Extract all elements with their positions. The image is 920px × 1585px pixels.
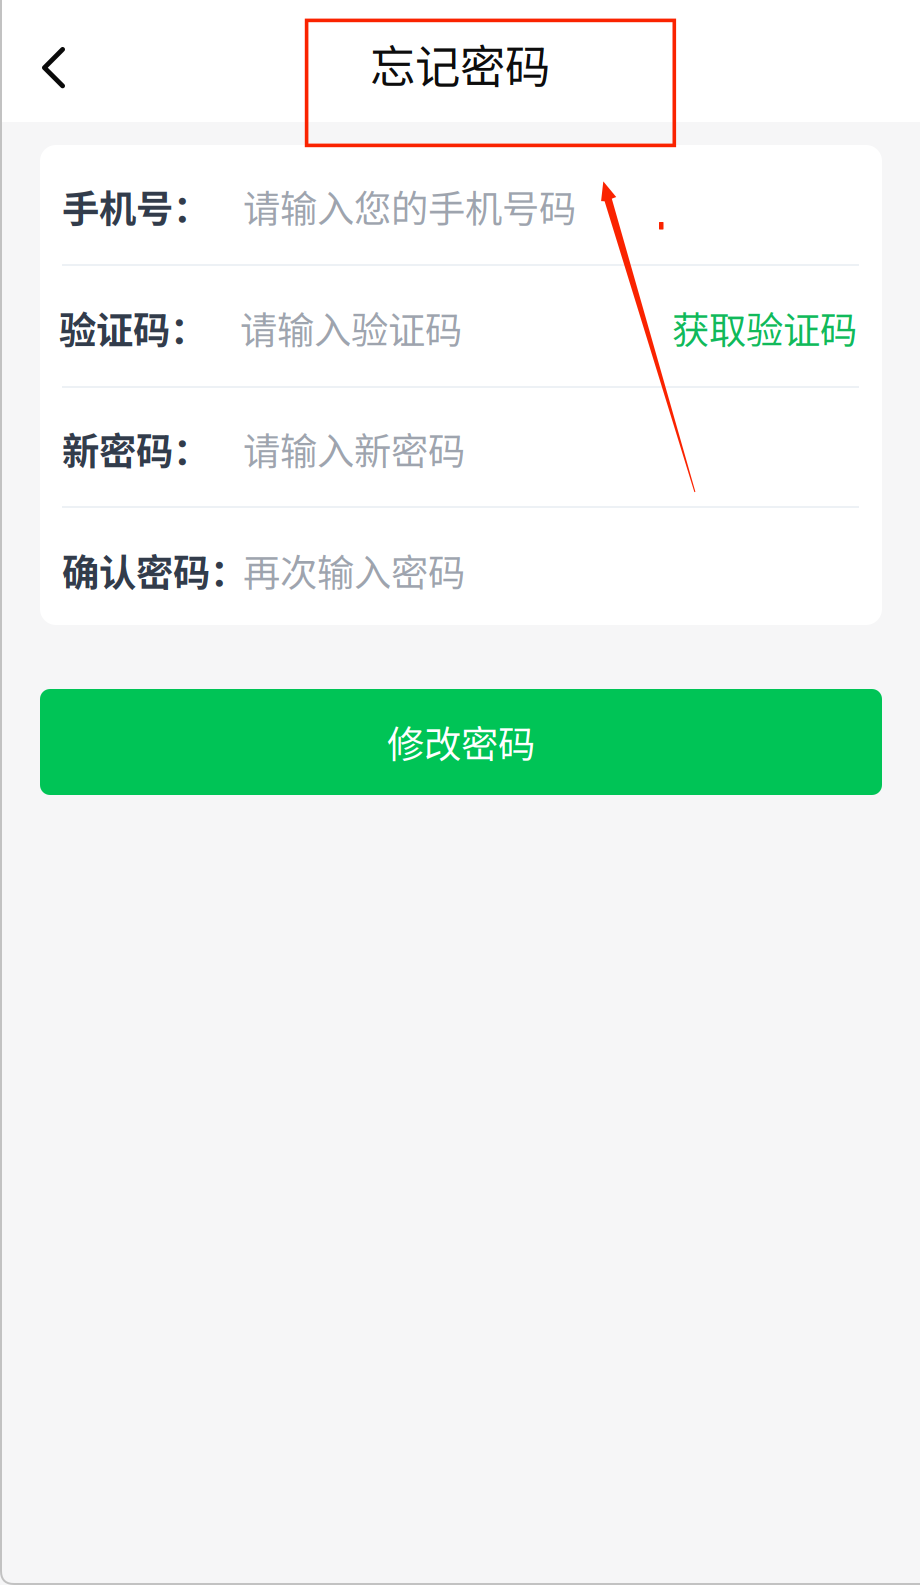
button[interactable]: 修改密码 <box>38 689 882 795</box>
staticText: 请输入新密码 <box>243 422 465 476</box>
button[interactable]: Back <box>0 0 108 122</box>
staticText: 确认密码： <box>62 543 247 598</box>
staticText: 请输入验证码 <box>240 301 462 355</box>
staticText: 新密码： <box>62 422 210 476</box>
staticText: 请输入您的手机号码 <box>243 179 576 234</box>
staticText: 手机号： <box>62 179 210 234</box>
button[interactable]: 确认密码： <box>62 512 854 629</box>
button[interactable]: 手机号： <box>62 149 854 264</box>
staticText: 获取验证码 <box>672 301 857 355</box>
staticText: 验证码： <box>59 301 207 355</box>
button[interactable]: 新密码： <box>62 392 854 506</box>
staticText: 修改密码 <box>387 715 535 769</box>
button[interactable]: 验证码： <box>59 270 672 386</box>
staticText: 再次输入密码 <box>243 543 465 598</box>
button[interactable]: 获取验证码 <box>672 270 857 386</box>
staticText: 忘记密码 <box>370 31 550 97</box>
